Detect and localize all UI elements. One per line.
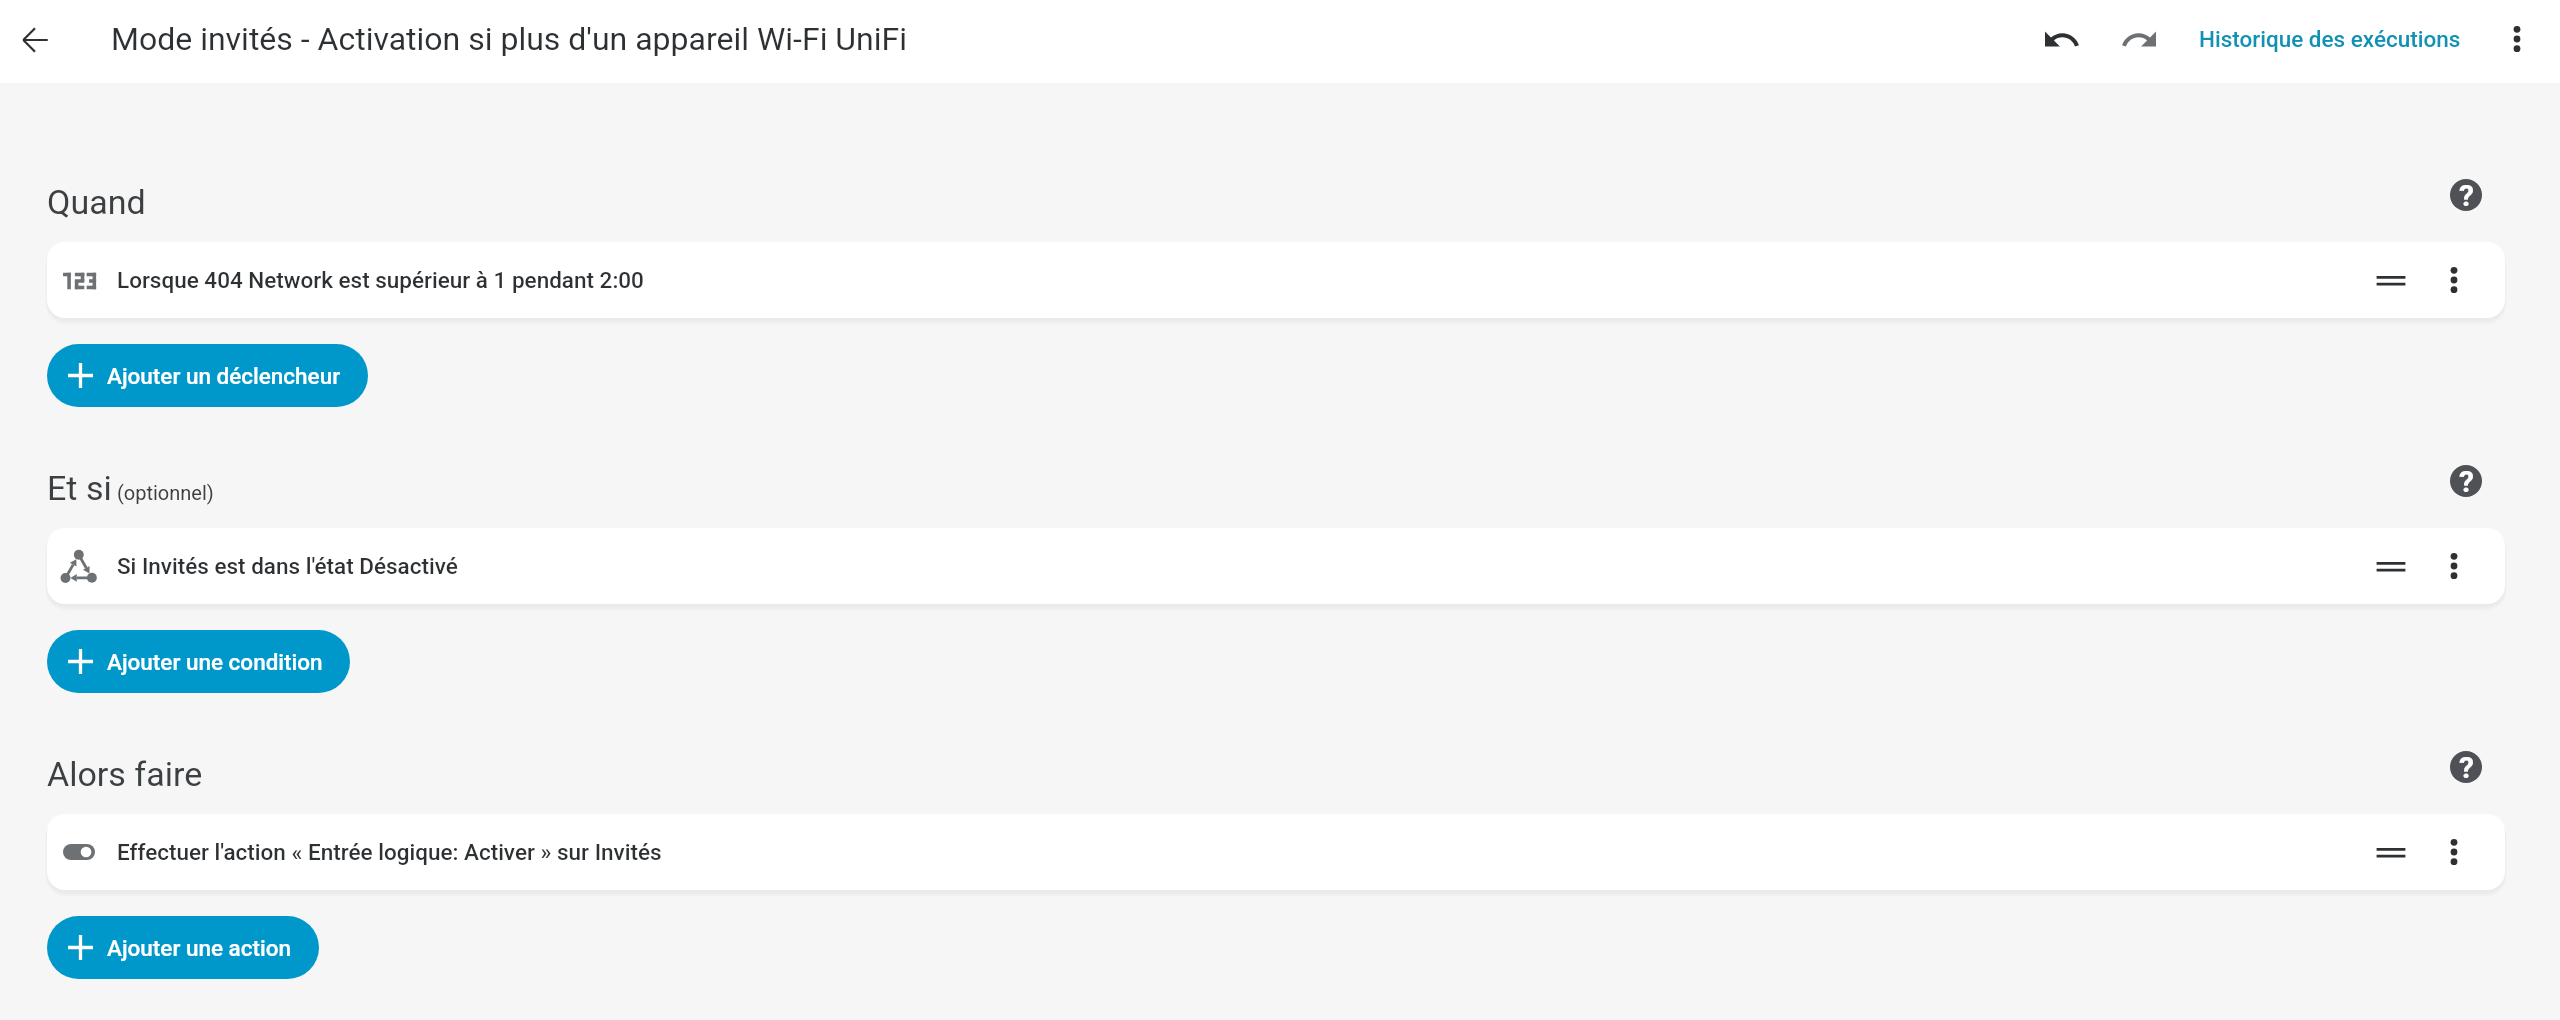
button[interactable]: Historique des exécutions	[2187, 11, 2473, 67]
button[interactable]: Options	[2426, 538, 2482, 594]
staticText: ?	[2459, 179, 2474, 210]
button[interactable]: Rétablir	[2111, 11, 2167, 67]
button[interactable]: Réorganiser	[2363, 252, 2419, 308]
staticText: Quand	[47, 182, 146, 222]
button[interactable]: Options	[2426, 824, 2482, 880]
staticText: Effectuer l'action « Entrée logique: Act…	[117, 839, 662, 865]
staticText: Lorsque 404 Network est supérieur à 1 pe…	[117, 267, 644, 293]
staticText: Ajouter une action	[107, 935, 292, 961]
staticText: Et si	[47, 468, 112, 508]
staticText: ?	[2459, 751, 2474, 782]
staticText: Alors faire	[47, 754, 203, 794]
button[interactable]: Effectuer l'action « Entrée logique: Act…	[47, 814, 2505, 890]
button[interactable]: Ajouter une condition	[47, 630, 350, 693]
button[interactable]: Aide : conditions	[2444, 459, 2488, 503]
staticText: Ajouter une condition	[107, 649, 323, 675]
button[interactable]: Réorganiser	[2363, 824, 2419, 880]
staticText: (optionnel)	[112, 481, 214, 504]
staticText: Si Invités est dans l'état Désactivé	[117, 553, 458, 579]
button[interactable]: Si Invités est dans l'état Désactivé	[47, 528, 2505, 604]
staticText: Mode invités - Activation si plus d'un a…	[111, 20, 908, 58]
button[interactable]: Ajouter un déclencheur	[47, 344, 368, 407]
button[interactable]: Aide : actions	[2444, 745, 2488, 789]
staticText: Historique des exécutions	[2199, 26, 2461, 52]
staticText: ?	[2459, 465, 2474, 496]
button[interactable]: Aide : déclencheurs	[2444, 173, 2488, 217]
button[interactable]: Plus d'options	[2489, 11, 2545, 67]
button[interactable]: Lorsque 404 Network est supérieur à 1 pe…	[47, 242, 2505, 318]
staticText: Ajouter un déclencheur	[107, 363, 341, 389]
button[interactable]: Réorganiser	[2363, 538, 2419, 594]
button[interactable]: Options	[2426, 252, 2482, 308]
button[interactable]: Retour	[11, 16, 59, 64]
button[interactable]: Ajouter une action	[47, 916, 319, 979]
button[interactable]: Annuler	[2034, 11, 2090, 67]
